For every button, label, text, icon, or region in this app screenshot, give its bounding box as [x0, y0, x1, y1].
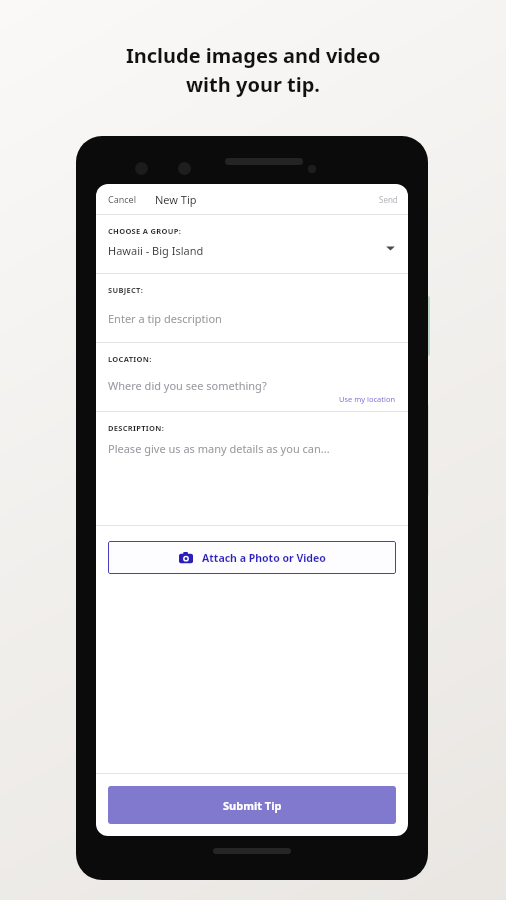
button[interactable]: Send	[375, 190, 402, 209]
staticText: SUBJECT:	[108, 285, 144, 295]
staticText: Include images and video	[126, 42, 381, 69]
button[interactable]: SUBJECT:	[96, 274, 408, 342]
button[interactable]: Use my location	[337, 392, 398, 406]
button[interactable]: Submit Tip	[108, 786, 396, 824]
staticText: with your tip.	[186, 71, 320, 98]
button[interactable]: DESCRIPTION:	[96, 412, 408, 525]
staticText: Attach a Photo or Video	[202, 551, 326, 565]
staticText: Please give us as many details as you ca…	[108, 441, 330, 456]
staticText: Cancel	[108, 193, 137, 205]
other: Camera	[179, 551, 193, 565]
staticText: Use my location	[339, 394, 396, 404]
staticText: Hawaii - Big Island	[108, 243, 204, 258]
staticText: DESCRIPTION:	[108, 423, 165, 433]
button[interactable]: Cancel	[102, 189, 143, 209]
staticText: New Tip	[155, 192, 197, 207]
other: Open group picker	[385, 243, 396, 254]
button[interactable]: Camera	[108, 541, 396, 574]
staticText: CHOOSE A GROUP:	[108, 226, 182, 236]
button[interactable]: CHOOSE A GROUP:	[96, 215, 408, 273]
staticText: Send	[379, 194, 398, 205]
staticText: LOCATION:	[108, 354, 152, 364]
staticText: Where did you see something?	[108, 378, 267, 393]
staticText: Submit Tip	[223, 798, 282, 813]
button[interactable]: LOCATION:	[96, 343, 408, 411]
staticText: Enter a tip description	[108, 311, 222, 326]
